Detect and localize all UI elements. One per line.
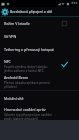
staticText: zpráv (datové připojení) xyxy=(4,117,39,120)
staticText: Android Beam xyxy=(4,75,29,80)
staticText: Přenos obsahu aplikace pomocí xyxy=(4,81,51,85)
button[interactable]: Tethering a přenosný hotspot xyxy=(0,43,79,56)
staticText: Mobilní sítě xyxy=(4,96,24,101)
staticText: Režim V letadle xyxy=(4,21,30,26)
button[interactable]: Settings xyxy=(1,8,9,16)
staticText: Síť VPN xyxy=(4,34,17,39)
button[interactable]: Hromadné zasílání zpráv xyxy=(0,105,79,120)
staticText: jiného zařízení s funkcí NFC xyxy=(4,69,44,73)
button[interactable]: NFC xyxy=(0,56,79,73)
staticText: přiložení xyxy=(4,85,17,89)
staticText: Tethering a přenosný hotspot xyxy=(4,47,54,52)
staticText: Povolit výměnu dat při dotyku xyxy=(4,65,48,69)
staticText: Bezdrátová připojení a sítě xyxy=(10,9,53,14)
staticText: Hromadné zasílání zpráv xyxy=(4,107,46,112)
button[interactable]: Režim V letadle xyxy=(0,17,79,30)
button[interactable]: NFC toggle xyxy=(61,61,68,68)
button[interactable]: Android Beam xyxy=(0,73,79,90)
button[interactable]: Režim V letadle toggle xyxy=(61,20,68,27)
button[interactable]: Síť VPN xyxy=(0,30,79,43)
staticText: NFC xyxy=(4,59,11,64)
button[interactable]: Mobilní sítě xyxy=(0,91,79,105)
staticText: Vyberte typ připojení pro zasílání xyxy=(4,113,52,117)
